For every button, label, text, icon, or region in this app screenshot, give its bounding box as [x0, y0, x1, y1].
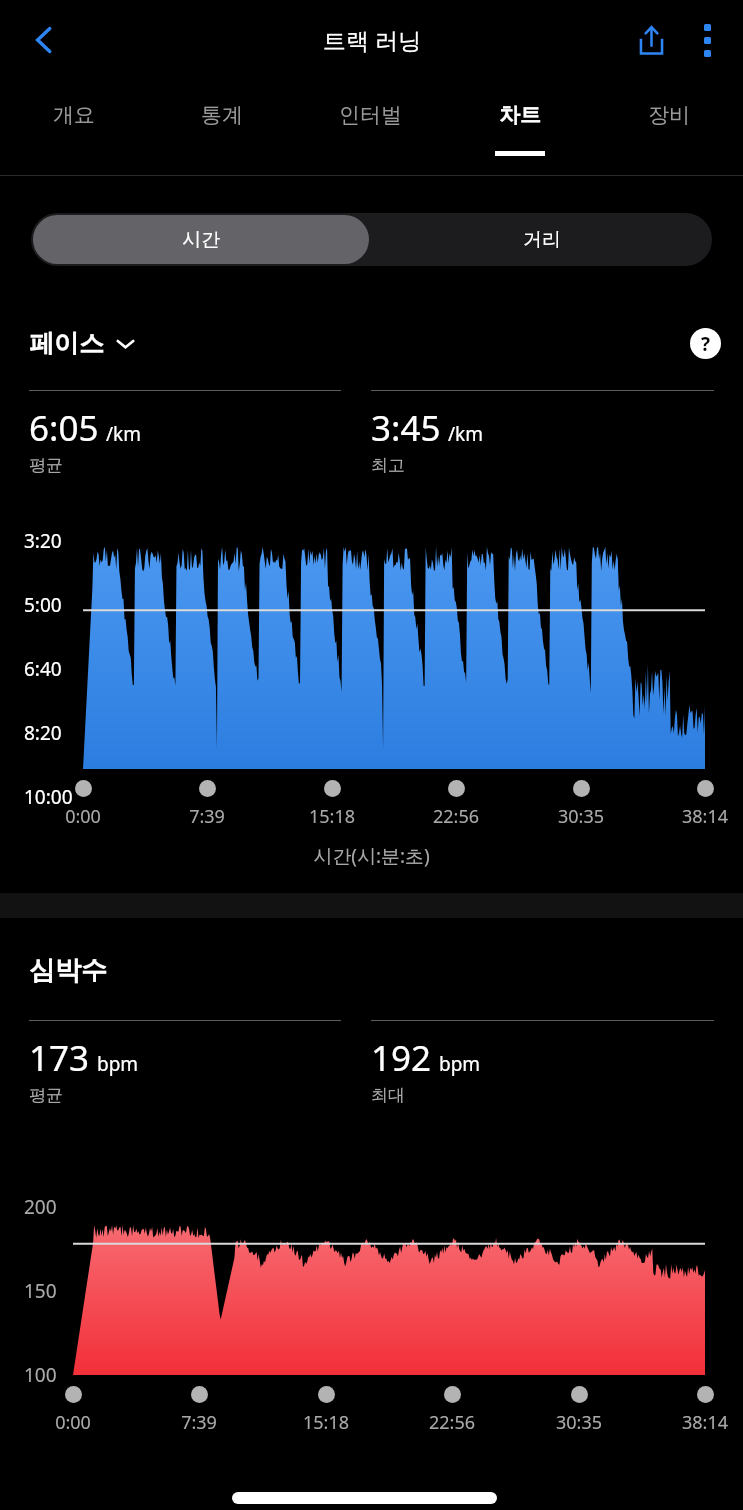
staticText: 173	[29, 1034, 90, 1082]
staticText: 6:05	[29, 404, 99, 452]
button[interactable]: 시간	[33, 215, 369, 264]
staticText: 15:18	[298, 804, 366, 829]
staticText: 7:39	[173, 804, 241, 829]
staticText: 10:00	[24, 784, 73, 810]
staticText: 3:20	[24, 528, 62, 554]
button[interactable]: 페이스	[29, 328, 136, 359]
staticText: 0:00	[49, 804, 117, 829]
staticText: 38:14	[671, 804, 739, 829]
staticText: bpm	[439, 1051, 481, 1077]
button[interactable]: 장비	[594, 79, 743, 175]
staticText: 최고	[371, 455, 405, 476]
staticText: 200	[24, 1194, 57, 1220]
button[interactable]: 개요	[0, 79, 148, 175]
staticText: 100	[24, 1362, 57, 1388]
button[interactable]: 인터벌	[296, 79, 445, 175]
staticText: bpm	[97, 1051, 139, 1077]
staticText: 심박수	[29, 954, 107, 987]
staticText: 3:45	[371, 404, 441, 452]
staticText: /km	[106, 421, 141, 447]
staticText: 평균	[29, 1085, 63, 1106]
staticText: 30:35	[547, 804, 615, 829]
staticText: 0:00	[39, 1410, 107, 1435]
staticText: 8:20	[24, 720, 62, 746]
button[interactable]: 거리	[371, 213, 712, 266]
staticText: 150	[24, 1278, 57, 1304]
staticText: /km	[448, 421, 483, 447]
staticText: 22:56	[422, 804, 490, 829]
staticText: 30:35	[545, 1410, 613, 1435]
button[interactable]: Help	[690, 328, 721, 359]
staticText: 개요	[53, 102, 95, 128]
staticText: 5:00	[24, 592, 62, 618]
staticText: 6:40	[24, 656, 62, 682]
staticText: 거리	[523, 228, 561, 252]
staticText: 페이스	[29, 328, 104, 359]
staticText: 장비	[648, 102, 690, 128]
staticText: 38:14	[671, 1410, 739, 1435]
staticText: 192	[371, 1034, 432, 1082]
staticText: 시간(시:분:초)	[0, 843, 743, 869]
staticText: 최대	[371, 1085, 405, 1106]
button[interactable]: Back	[16, 12, 72, 68]
staticText: 통계	[201, 102, 243, 128]
button[interactable]: 통계	[148, 79, 296, 175]
button[interactable]: Share	[623, 12, 679, 68]
button[interactable]: 차트	[445, 79, 594, 175]
staticText: 인터벌	[339, 102, 402, 128]
button[interactable]: More options	[679, 12, 735, 68]
staticText: 차트	[499, 102, 541, 128]
staticText: 시간	[182, 228, 220, 252]
staticText: 15:18	[292, 1410, 360, 1435]
staticText: 22:56	[418, 1410, 486, 1435]
staticText: ?	[701, 331, 711, 357]
staticText: 트랙 러닝	[323, 24, 421, 55]
staticText: 평균	[29, 455, 63, 476]
staticText: 7:39	[165, 1410, 233, 1435]
